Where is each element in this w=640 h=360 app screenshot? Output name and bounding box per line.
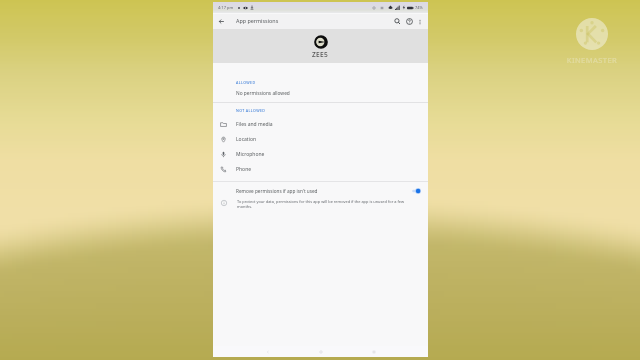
staticText: NOT ALLOWED — [236, 108, 266, 113]
staticText: Phone — [236, 166, 252, 173]
staticText: Microphone — [236, 151, 265, 158]
button[interactable]: More options — [415, 14, 425, 29]
staticText: 74% — [415, 5, 423, 10]
staticText: 4:17 pm — [218, 5, 234, 10]
button[interactable]: Phone — [213, 162, 428, 177]
button[interactable]: No permissions allowed — [213, 85, 428, 101]
staticText: KINEMASTER — [556, 55, 628, 65]
staticText: App permissions — [236, 17, 279, 24]
staticText: To protect your data, permissions for th… — [237, 199, 409, 209]
button[interactable]: Search — [391, 16, 403, 28]
button[interactable]: Files and media — [213, 117, 428, 132]
button[interactable]: Help — [403, 16, 415, 28]
button[interactable]: Back — [213, 14, 229, 29]
staticText: Files and media — [236, 121, 273, 128]
button[interactable]: Microphone — [213, 147, 428, 162]
staticText: ALLOWED — [236, 80, 256, 85]
staticText: Location — [236, 136, 257, 143]
staticText: Remove permissions if app isn't used — [236, 188, 318, 194]
staticText: ZEE5 — [312, 50, 329, 59]
button[interactable]: Location — [213, 132, 428, 147]
button[interactable]: Remove permissions if app isn't used — [213, 182, 428, 199]
staticText: No permissions allowed — [236, 90, 290, 97]
